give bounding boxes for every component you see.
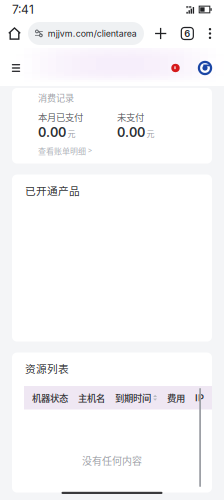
staticText: 没有任何内容 — [82, 453, 142, 468]
button[interactable]: Support — [196, 59, 214, 77]
staticText: 0.00 — [38, 125, 66, 140]
staticText: 到期时间 — [115, 391, 151, 404]
button[interactable]: Tabs — [177, 19, 197, 48]
button[interactable]: Home — [1, 19, 28, 48]
staticText: 6 — [184, 28, 190, 39]
staticText: > — [87, 146, 92, 155]
staticText: 消费记录 — [38, 91, 74, 104]
button[interactable]: Address bar — [28, 22, 144, 45]
staticText: 机器状态 — [32, 391, 68, 404]
staticText: mjjvm.com/clientarea — [48, 28, 137, 39]
staticText: 元 — [147, 128, 155, 139]
staticText: 资源列表 — [25, 361, 69, 376]
staticText: 主机名 — [78, 391, 105, 404]
staticText: 费用 — [167, 391, 185, 404]
staticText: 查看账单明细 — [38, 145, 86, 157]
button[interactable]: New tab — [150, 19, 172, 48]
staticText: 已开通产品 — [25, 183, 80, 198]
button[interactable]: More options — [203, 19, 217, 48]
staticText: 0.00 — [117, 125, 145, 140]
staticText: 7:41 — [12, 2, 34, 17]
button[interactable]: Menu — [5, 57, 27, 79]
button[interactable]: Notifications — [167, 59, 184, 76]
staticText: 元 — [68, 128, 76, 139]
staticText: IP — [195, 392, 204, 403]
staticText: 未支付 — [117, 110, 144, 124]
staticText: 本月已支付 — [38, 110, 83, 124]
button[interactable]: 查看账单明细 — [38, 140, 92, 157]
